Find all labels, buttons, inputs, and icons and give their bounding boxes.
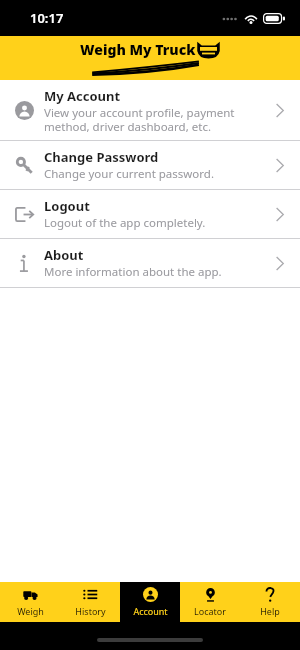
staticText: Help <box>260 605 280 617</box>
button[interactable]: Help <box>240 582 300 622</box>
button[interactable]: Change Password <box>0 141 300 189</box>
staticText: 10:17 <box>30 9 64 27</box>
button[interactable]: History <box>60 582 120 622</box>
button[interactable]: About <box>0 239 300 287</box>
staticText: Logout of the app completely. <box>44 215 206 231</box>
staticText: More information about the app. <box>44 264 222 280</box>
staticText: Weigh My Truck <box>80 40 196 59</box>
staticText: My Account <box>44 87 121 105</box>
staticText: View your account profile, payment metho… <box>44 105 235 134</box>
staticText: Weigh <box>17 605 44 617</box>
staticText: Locator <box>194 605 226 617</box>
button[interactable]: Locator <box>180 582 240 622</box>
staticText: Logout <box>44 197 90 215</box>
button[interactable]: My Account <box>0 80 300 140</box>
staticText: About <box>44 246 84 264</box>
staticText: Change Password <box>44 148 159 166</box>
button[interactable]: Weigh <box>0 582 60 622</box>
staticText: Change your current password. <box>44 166 214 182</box>
button[interactable]: Account <box>120 582 180 622</box>
staticText: History <box>75 605 106 617</box>
staticText: Account <box>133 605 168 617</box>
button[interactable]: Logout <box>0 190 300 238</box>
